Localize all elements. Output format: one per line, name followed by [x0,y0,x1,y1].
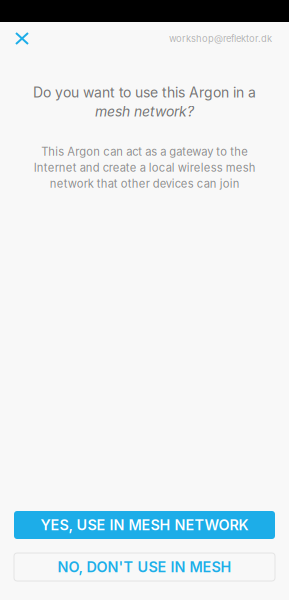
staticText: mesh network? [95,103,194,120]
button[interactable]: NO, DON'T USE IN MESH [14,553,275,581]
staticText: This Argon can act as a gateway to the I… [33,145,255,191]
staticText: NO, DON'T USE IN MESH [57,558,231,576]
button[interactable]: YES, USE IN MESH NETWORK [14,511,275,539]
button[interactable]: Close [0,22,42,55]
staticText: Do you want to use this Argon in a [33,84,256,101]
staticText: workshop@reflektor.dk [169,33,272,44]
staticText: YES, USE IN MESH NETWORK [40,516,248,534]
